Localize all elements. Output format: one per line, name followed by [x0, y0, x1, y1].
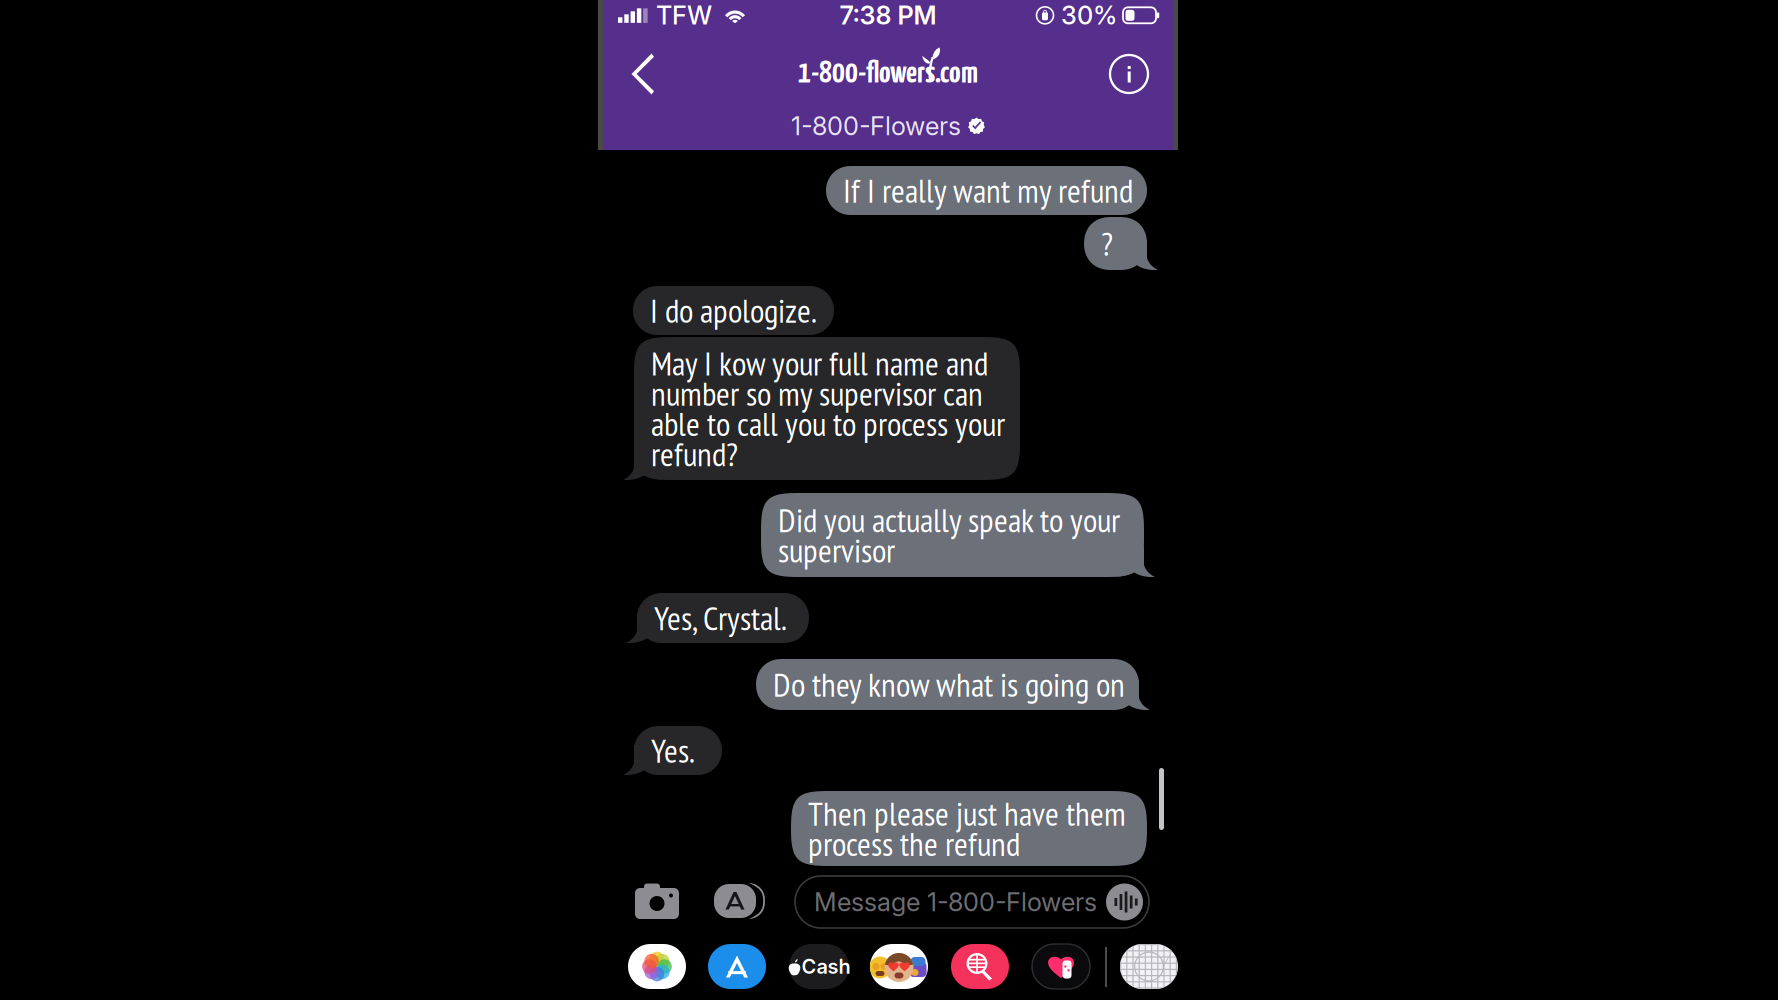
staticText: 1-800-Flowers	[791, 111, 961, 141]
staticText: Yes, Crystal.	[654, 603, 787, 633]
staticText: I do apologize.	[650, 295, 817, 326]
staticText: Message 1-800-Flowers	[814, 887, 1097, 917]
staticText: Yes.	[651, 735, 695, 766]
button[interactable]: Message 1-800-Flowers	[795, 876, 1149, 928]
button[interactable]: Take photo	[635, 884, 679, 919]
staticText: TFW	[656, 0, 712, 31]
staticText: May I kow your full name and number so m…	[651, 348, 1005, 469]
staticText: Then please just have them process the r…	[808, 798, 1126, 859]
staticText: Do they know what is going on	[773, 669, 1125, 700]
button[interactable]: iMessage apps	[710, 882, 764, 920]
button[interactable]: App Store	[708, 944, 766, 989]
staticText: Cash	[801, 954, 850, 979]
staticText: Did you actually speak to your superviso…	[778, 505, 1120, 565]
button[interactable]: Back	[603, 36, 678, 112]
staticText: 1-800-flowers.com	[798, 59, 978, 89]
button[interactable]: Apple Cash	[786, 944, 852, 989]
staticText: 30%	[1061, 0, 1117, 31]
button[interactable]: Health sharing	[1032, 944, 1090, 989]
button[interactable]: #images	[951, 944, 1009, 989]
staticText: 7:38 PM	[839, 0, 936, 31]
staticText: If I really want my refund	[843, 175, 1133, 206]
staticText: ?	[1101, 228, 1113, 259]
button[interactable]: Photos	[628, 944, 686, 989]
button[interactable]: Browse apps	[1120, 944, 1178, 989]
button[interactable]: Memoji stickers	[870, 944, 928, 989]
button[interactable]: Conversation details	[1087, 36, 1173, 112]
